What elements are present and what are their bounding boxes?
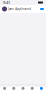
button[interactable]: Tab 3 (18, 84, 28, 92)
button[interactable]: Tab 4 (28, 84, 37, 92)
staticText: 9:41 (3, 0, 10, 5)
button[interactable]: Tab 1 (0, 84, 9, 92)
staticText: Jane Appleseed (8, 7, 31, 11)
button[interactable]: Tab 5 (37, 84, 46, 92)
button[interactable]: Tab 2 (9, 84, 18, 92)
